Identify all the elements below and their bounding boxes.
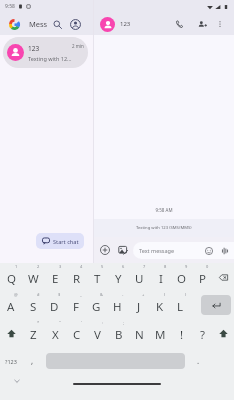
staticText: W bbox=[28, 271, 39, 287]
button[interactable]: $ bbox=[44, 291, 65, 319]
staticText: T bbox=[94, 271, 101, 287]
staticText: ?123 bbox=[5, 358, 17, 365]
staticText: . bbox=[197, 355, 200, 366]
button[interactable]: More options bbox=[213, 17, 227, 31]
button[interactable]: ( bbox=[149, 291, 170, 319]
staticText: 9:58 AM bbox=[94, 207, 234, 213]
staticText: @ bbox=[14, 292, 18, 297]
button[interactable]: 1 bbox=[0, 263, 22, 291]
button[interactable]: 5 bbox=[87, 263, 108, 291]
staticText: H bbox=[113, 299, 122, 315]
button[interactable]: Hide keyboard bbox=[12, 376, 22, 386]
staticText: 9:58 bbox=[5, 3, 15, 10]
staticText: # bbox=[37, 292, 40, 297]
staticText: J bbox=[137, 299, 141, 315]
staticText: $ bbox=[58, 292, 61, 297]
staticText: D bbox=[50, 299, 59, 315]
staticText: M bbox=[155, 327, 166, 343]
staticText: ( bbox=[164, 292, 166, 297]
staticText: 0 bbox=[206, 264, 209, 269]
button[interactable]: Text message bbox=[133, 242, 234, 259]
staticText: Texting with 123 (SMS/MMS) bbox=[136, 225, 192, 231]
button[interactable]: " bbox=[44, 319, 66, 347]
staticText: V bbox=[94, 327, 101, 343]
button[interactable]: 4 bbox=[66, 263, 87, 291]
staticText: ) bbox=[185, 292, 187, 297]
button[interactable]: & bbox=[86, 291, 107, 319]
staticText: 9 bbox=[185, 264, 188, 269]
staticText: ? bbox=[200, 327, 205, 343]
staticText: P bbox=[199, 271, 206, 287]
button[interactable]: ) bbox=[170, 291, 191, 319]
staticText: Texting with 12... bbox=[28, 55, 72, 62]
button[interactable]: ?123 bbox=[0, 347, 22, 375]
staticText: N bbox=[135, 327, 144, 343]
staticText: Q bbox=[7, 271, 16, 287]
button[interactable]: Call bbox=[172, 17, 186, 31]
staticText: _ bbox=[80, 292, 82, 297]
button[interactable]: ' bbox=[66, 319, 87, 347]
button[interactable]: Caps lock bbox=[213, 319, 234, 347]
staticText: L bbox=[177, 299, 184, 315]
button[interactable]: 8 bbox=[150, 263, 171, 291]
staticText: 1 bbox=[15, 264, 18, 269]
staticText: ' bbox=[81, 320, 82, 325]
button[interactable]: Shift bbox=[0, 319, 22, 347]
staticText: 4 bbox=[80, 264, 83, 269]
staticText: 3 bbox=[59, 264, 62, 269]
button[interactable]: + bbox=[128, 291, 149, 319]
button[interactable]: Gallery bbox=[116, 243, 130, 257]
staticText: K bbox=[156, 299, 164, 315]
staticText: C bbox=[73, 327, 81, 343]
staticText: U bbox=[135, 271, 144, 287]
button[interactable]: . bbox=[188, 347, 209, 375]
button[interactable]: 2 bbox=[22, 263, 44, 291]
button[interactable]: ; bbox=[108, 319, 129, 347]
button[interactable]: 9 bbox=[171, 263, 192, 291]
staticText: 2 bbox=[37, 264, 40, 269]
staticText: 123 bbox=[28, 44, 40, 53]
button[interactable]: * bbox=[22, 319, 44, 347]
button[interactable]: ! bbox=[171, 319, 192, 347]
button[interactable]: Enter bbox=[201, 295, 231, 315]
staticText: Mess bbox=[29, 19, 48, 29]
button[interactable]: Start chat bbox=[36, 233, 84, 249]
button[interactable]: Account bbox=[69, 18, 82, 31]
button[interactable]: N bbox=[129, 319, 150, 347]
staticText: ! bbox=[180, 327, 184, 343]
staticText: ; bbox=[123, 320, 125, 325]
button[interactable]: ? bbox=[192, 319, 213, 347]
button[interactable]: Add contact bbox=[195, 17, 209, 31]
staticText: 5 bbox=[101, 264, 104, 269]
button[interactable]: 6 bbox=[108, 263, 129, 291]
staticText: 6 bbox=[122, 264, 125, 269]
staticText: F bbox=[73, 299, 79, 315]
button[interactable]: M bbox=[150, 319, 171, 347]
button[interactable]: 0 bbox=[192, 263, 213, 291]
staticText: B bbox=[115, 327, 123, 343]
staticText: R bbox=[73, 271, 81, 287]
button[interactable]: , bbox=[22, 347, 43, 375]
button[interactable]: # bbox=[22, 291, 44, 319]
staticText: X bbox=[52, 327, 59, 343]
staticText: 8 bbox=[164, 264, 167, 269]
button[interactable]: 7 bbox=[129, 263, 150, 291]
button[interactable]: - bbox=[107, 291, 128, 319]
button[interactable]: @ bbox=[0, 291, 22, 319]
staticText: E bbox=[52, 271, 59, 287]
staticText: , bbox=[31, 355, 34, 366]
button[interactable]: : bbox=[87, 319, 108, 347]
staticText: & bbox=[100, 292, 103, 297]
staticText: : bbox=[102, 320, 104, 325]
button[interactable]: Backspace bbox=[213, 263, 234, 291]
button[interactable]: Search bbox=[51, 18, 64, 31]
button[interactable]: 3 bbox=[44, 263, 66, 291]
staticText: 7 bbox=[143, 264, 146, 269]
button[interactable]: _ bbox=[65, 291, 86, 319]
staticText: + bbox=[142, 292, 145, 297]
button[interactable]: 123 bbox=[3, 37, 88, 68]
button[interactable]: Attach bbox=[98, 243, 112, 257]
staticText: I bbox=[159, 271, 163, 287]
staticText: G bbox=[92, 299, 101, 315]
